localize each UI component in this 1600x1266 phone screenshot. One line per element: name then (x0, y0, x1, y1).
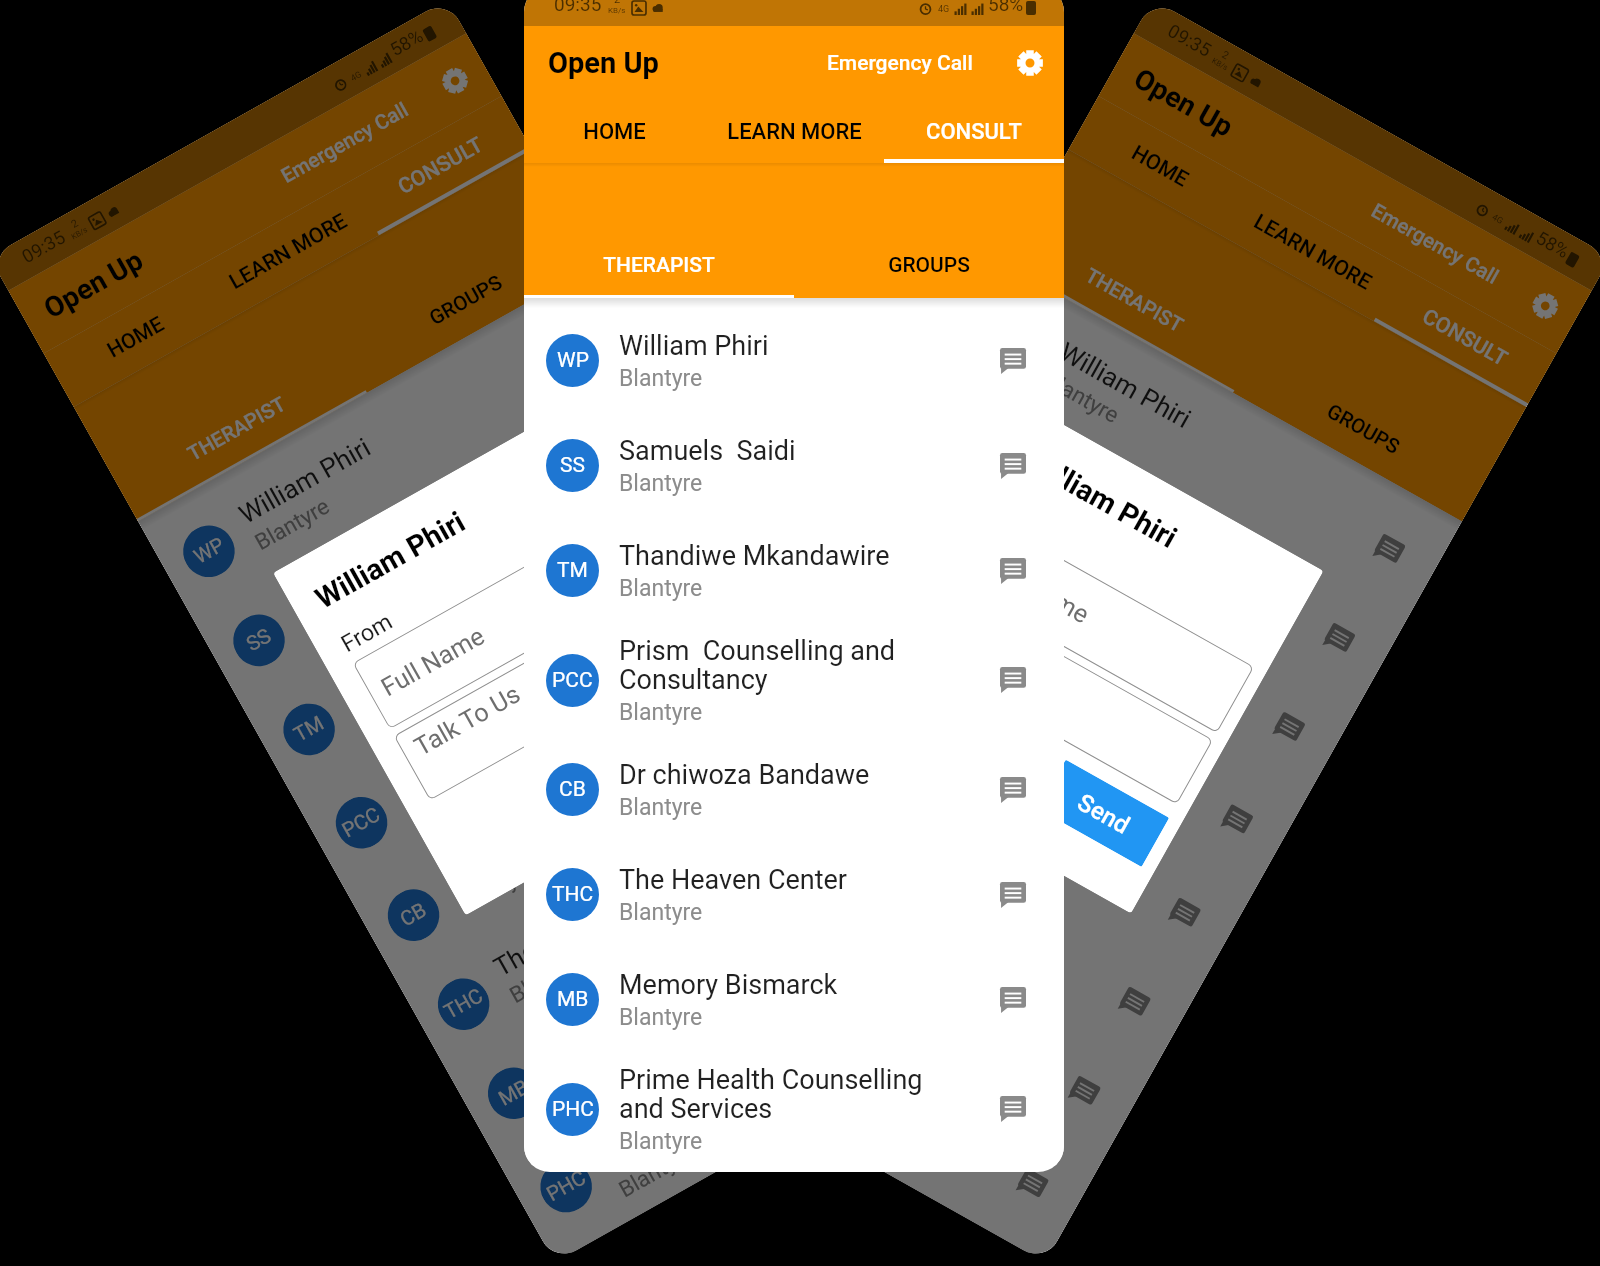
staticText: PHC (543, 1166, 590, 1207)
staticText: TM (290, 711, 328, 747)
staticText: CONSULT (1418, 304, 1512, 372)
button[interactable]: Message (993, 875, 1033, 915)
button[interactable]: CONSULT (349, 96, 532, 235)
button[interactable]: HOME (1068, 96, 1251, 235)
button[interactable]: Message (656, 493, 709, 546)
button[interactable]: HOME (524, 100, 704, 163)
button[interactable]: THERAPIST (107, 338, 367, 521)
button[interactable]: CB (347, 636, 855, 983)
button[interactable]: Message (993, 446, 1033, 486)
staticText: LEARN MORE (225, 208, 352, 295)
button[interactable]: PHC (498, 903, 1010, 1258)
button[interactable]: WP (143, 272, 651, 619)
button[interactable]: SS (524, 413, 1064, 518)
button[interactable]: LEARN MORE (704, 100, 884, 163)
button[interactable]: Emergency Call (827, 51, 973, 76)
button[interactable]: MB (447, 814, 956, 1161)
staticText: THERAPIST (183, 392, 290, 467)
staticText: PHC (635, 955, 682, 996)
staticText: Emergency Call (277, 98, 413, 189)
staticText: Full Name (376, 621, 489, 702)
button[interactable]: Emergency Call (277, 98, 413, 189)
button[interactable]: Message (993, 551, 1033, 591)
button[interactable]: THC (524, 842, 1064, 947)
staticText: Blantyre (505, 946, 589, 1009)
button[interactable]: MB (644, 814, 1152, 1161)
button[interactable]: CONSULT (1374, 268, 1556, 407)
button[interactable]: SS (899, 361, 1407, 708)
button[interactable]: THC (397, 725, 905, 1072)
button[interactable]: TM (524, 518, 1064, 623)
button[interactable]: PCC (795, 540, 1307, 894)
button[interactable]: HOME (44, 268, 226, 407)
button[interactable]: WP (949, 272, 1457, 619)
button[interactable]: PHC (590, 903, 1102, 1258)
button[interactable]: Settings (1015, 48, 1045, 78)
staticText: Dr chiwoza Bandawe (619, 759, 870, 791)
button[interactable]: Message (1210, 795, 1263, 848)
button[interactable]: Message (993, 980, 1033, 1020)
staticText: CB (559, 777, 586, 802)
staticText: LEARN MORE (727, 119, 862, 145)
button[interactable]: Message (1312, 613, 1365, 666)
button[interactable]: CB (745, 636, 1253, 983)
button[interactable]: GROUPS (336, 209, 596, 393)
button[interactable]: Message (811, 768, 864, 821)
staticText: Blantyre (940, 544, 1024, 607)
staticText: GROUPS (888, 253, 970, 278)
staticText: THERAPIST (1081, 263, 1187, 338)
button[interactable]: Message (993, 660, 1033, 700)
button[interactable]: GROUPS (794, 233, 1064, 298)
button[interactable]: TM (243, 450, 751, 797)
button[interactable]: GROUPS (1233, 338, 1493, 521)
button[interactable]: THC (694, 725, 1203, 1072)
staticText: Talk To Us (947, 607, 1063, 690)
staticText: Blantyre (619, 699, 703, 726)
staticText: 09:35 (18, 226, 69, 267)
button[interactable]: CONSULT (884, 100, 1064, 163)
button[interactable]: Message (606, 404, 659, 457)
button[interactable]: Send (594, 668, 725, 775)
staticText: SS (242, 624, 276, 657)
button[interactable]: Settings (435, 61, 475, 101)
button[interactable]: WP (524, 308, 1064, 413)
button[interactable]: Message (993, 341, 1033, 381)
staticText: Send (629, 696, 691, 748)
button[interactable]: Message (556, 315, 609, 368)
button[interactable]: Message (1057, 1066, 1110, 1119)
staticText: 58% (1532, 226, 1573, 262)
button[interactable]: CB (524, 737, 1064, 842)
button[interactable]: Message (993, 1089, 1033, 1129)
button[interactable]: TM (849, 450, 1357, 797)
button[interactable]: Message (1262, 702, 1315, 755)
button[interactable]: THERAPIST (1004, 209, 1264, 393)
staticText: WP (190, 533, 229, 569)
button[interactable]: SS (193, 361, 701, 708)
button[interactable]: Message (993, 770, 1033, 810)
button[interactable]: PCC (524, 623, 1064, 737)
button[interactable]: LEARN MORE (1221, 182, 1404, 321)
staticText: Blantyre (619, 1128, 703, 1155)
staticText: Blantyre (835, 730, 919, 793)
button[interactable]: Message (1005, 1158, 1058, 1211)
button[interactable]: Settings (1525, 286, 1565, 326)
button[interactable]: Send (1038, 760, 1169, 867)
button[interactable]: PHC (524, 1052, 1064, 1166)
button[interactable]: Message (761, 679, 814, 732)
button[interactable]: THERAPIST (524, 233, 794, 298)
button[interactable]: PCC (293, 540, 805, 894)
button[interactable]: Message (1362, 524, 1415, 577)
button[interactable]: Emergency Call (1367, 199, 1503, 290)
button[interactable]: MB (524, 947, 1064, 1052)
button[interactable]: Message (1158, 888, 1211, 941)
button[interactable]: LEARN MORE (196, 182, 379, 321)
staticText: Full Name (981, 548, 1094, 629)
staticText: Memory Bismarck (619, 969, 838, 1001)
button[interactable]: Message (1107, 977, 1160, 1030)
staticText: 09:35 (554, 0, 602, 15)
staticText: 58% (386, 24, 427, 60)
